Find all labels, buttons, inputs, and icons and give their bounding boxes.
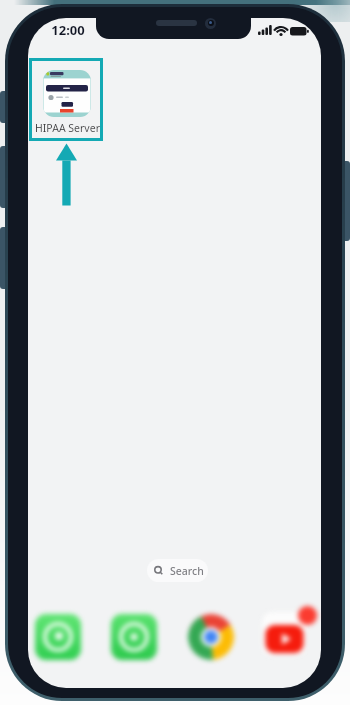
button[interactable] [35, 614, 81, 660]
button[interactable] [188, 614, 234, 660]
button[interactable] [262, 612, 306, 656]
button[interactable] [43, 70, 91, 117]
button[interactable]: Search [147, 559, 208, 582]
staticText: Search [170, 564, 204, 578]
staticText: 12:00 [51, 21, 85, 39]
button[interactable] [111, 614, 157, 660]
staticText: HIPAA Server [35, 121, 100, 135]
